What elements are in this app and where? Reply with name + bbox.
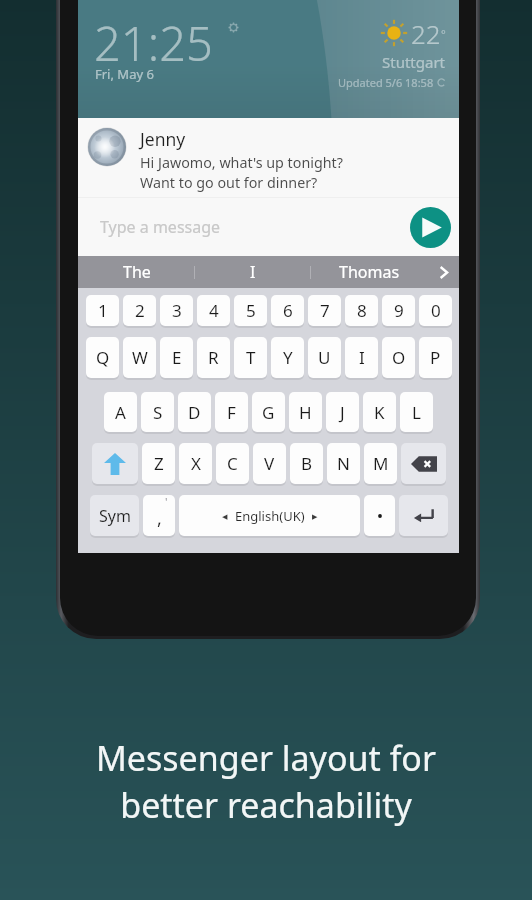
staticText: 6 — [283, 299, 293, 322]
button[interactable]: L — [400, 392, 433, 432]
staticText: X — [191, 452, 201, 475]
button[interactable]: ◂ — [179, 495, 360, 536]
staticText: V — [264, 452, 275, 475]
button[interactable]: S — [141, 392, 174, 432]
button[interactable]: W — [123, 337, 156, 378]
staticText: , — [157, 506, 162, 531]
button[interactable]: X — [179, 443, 212, 484]
staticText: Thomas — [339, 261, 400, 283]
button[interactable]: 7 — [308, 295, 341, 326]
staticText: D — [188, 401, 201, 424]
staticText: better reachability — [120, 782, 412, 828]
staticText: Updated 5/6 18:58 — [338, 75, 434, 90]
staticText: 21:25 — [94, 11, 213, 75]
staticText: Want to go out for dinner? — [140, 173, 318, 192]
button[interactable]: The — [78, 256, 195, 288]
button[interactable]: Z — [142, 443, 175, 484]
button[interactable]: N — [327, 443, 360, 484]
staticText: Stuttgart — [382, 52, 446, 72]
staticText: The — [123, 261, 151, 283]
button[interactable]: F — [215, 392, 248, 432]
staticText: W — [132, 346, 148, 369]
staticText: Q — [96, 346, 110, 369]
button[interactable]: I — [195, 256, 311, 288]
staticText: S — [153, 401, 163, 424]
staticText: R — [208, 346, 219, 369]
button[interactable]: More suggestions — [427, 256, 459, 288]
staticText: J — [340, 401, 345, 424]
button[interactable]: 5 — [234, 295, 267, 326]
staticText: C — [227, 452, 238, 475]
button[interactable]: Sym — [90, 495, 139, 536]
staticText: 22 — [411, 16, 441, 51]
staticText: H — [299, 401, 312, 424]
button[interactable]: U — [308, 337, 341, 378]
button[interactable] — [92, 443, 138, 484]
staticText: 0 — [431, 299, 441, 322]
staticText: 5 — [246, 299, 256, 322]
staticText: ' — [165, 495, 168, 509]
button[interactable]: M — [364, 443, 397, 484]
staticText: 3 — [172, 299, 182, 322]
staticText: I — [359, 346, 365, 369]
button[interactable]: Y — [271, 337, 304, 378]
button[interactable]: Thomas — [311, 256, 427, 288]
staticText: U — [318, 346, 331, 369]
staticText: Messenger layout for — [96, 735, 436, 781]
staticText: Z — [154, 452, 164, 475]
button[interactable]: 9 — [382, 295, 415, 326]
button[interactable]: 3 — [160, 295, 193, 326]
staticText: F — [227, 401, 236, 424]
button[interactable]: O — [382, 337, 415, 378]
staticText: Sym — [99, 505, 131, 527]
staticText: E — [172, 346, 182, 369]
button[interactable]: G — [252, 392, 285, 432]
button[interactable]: A — [104, 392, 137, 432]
staticText: L — [412, 401, 421, 424]
staticText: 9 — [394, 299, 404, 322]
staticText: 1 — [98, 299, 108, 322]
button[interactable]: J — [326, 392, 359, 432]
staticText: N — [337, 452, 350, 475]
button[interactable]: E — [160, 337, 193, 378]
button[interactable]: , — [143, 495, 175, 536]
button[interactable]: Send — [410, 207, 451, 248]
button[interactable]: I — [345, 337, 378, 378]
staticText: A — [115, 401, 126, 424]
button[interactable]: 2 — [123, 295, 156, 326]
staticText: 7 — [320, 299, 330, 322]
button[interactable]: 4 — [197, 295, 230, 326]
button[interactable] — [399, 495, 448, 536]
staticText: 4 — [209, 299, 219, 322]
staticText: P — [430, 346, 441, 369]
button[interactable] — [401, 443, 446, 484]
button[interactable]: H — [289, 392, 322, 432]
staticText: B — [301, 452, 313, 475]
staticText: 8 — [357, 299, 367, 322]
staticText: Fri, May 6 — [95, 65, 154, 83]
staticText: ° — [441, 26, 446, 41]
staticText: Y — [283, 346, 293, 369]
button[interactable]: Q — [86, 337, 119, 378]
staticText: Type a message — [100, 216, 221, 238]
staticText: I — [250, 261, 256, 283]
button[interactable]: B — [290, 443, 323, 484]
button[interactable]: 8 — [345, 295, 378, 326]
staticText: T — [246, 346, 256, 369]
button[interactable]: 1 — [86, 295, 119, 326]
staticText: ◂ — [222, 510, 228, 523]
button[interactable]: D — [178, 392, 211, 432]
button[interactable]: C — [216, 443, 249, 484]
staticText: English(UK) — [235, 507, 305, 525]
button[interactable]: V — [253, 443, 286, 484]
staticText: M — [373, 452, 389, 475]
staticText: G — [262, 401, 275, 424]
button[interactable]: R — [197, 337, 230, 378]
button[interactable] — [364, 495, 395, 536]
button[interactable]: T — [234, 337, 267, 378]
button[interactable]: K — [363, 392, 396, 432]
button[interactable]: P — [419, 337, 452, 378]
staticText: 2 — [135, 299, 145, 322]
button[interactable]: 0 — [419, 295, 452, 326]
button[interactable]: 6 — [271, 295, 304, 326]
